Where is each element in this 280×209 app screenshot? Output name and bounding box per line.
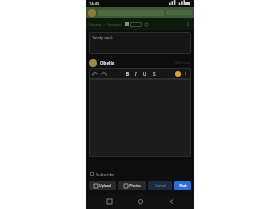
button[interactable]: Undo (92, 71, 98, 77)
button[interactable]: Strikethrough (151, 71, 157, 77)
staticText: I (135, 71, 137, 77)
button[interactable]: Back (163, 193, 179, 209)
button[interactable]: Underline (142, 71, 148, 77)
staticText: B (126, 71, 129, 77)
staticText: Obelix (100, 60, 115, 66)
button[interactable] (89, 79, 191, 157)
button[interactable]: Redo (101, 71, 107, 77)
button[interactable]: Subscribe (90, 169, 190, 179)
button[interactable]: Emoji (175, 71, 181, 77)
staticText: Tandy said: (92, 35, 113, 40)
button[interactable]: Photos (118, 181, 146, 190)
button[interactable]: Bold (124, 71, 130, 77)
staticText: 14:45 (89, 1, 100, 6)
staticText: Cancel (155, 183, 166, 188)
button[interactable]: More formatting (183, 71, 188, 76)
staticText: Subscribe (96, 172, 115, 177)
button[interactable]: Upload (89, 181, 116, 190)
button[interactable]: Obelix (89, 57, 191, 68)
staticText: Old School (175, 61, 191, 65)
staticText: S (153, 71, 156, 77)
button[interactable]: Post (174, 181, 191, 190)
staticText: U (143, 71, 147, 77)
button[interactable]: Account (88, 9, 96, 17)
button[interactable]: Recents (101, 193, 117, 209)
button[interactable]: Watch (144, 22, 149, 27)
staticText: Post (179, 183, 187, 188)
button[interactable]: Cancel (148, 181, 172, 190)
button[interactable]: Italic (133, 71, 139, 77)
button[interactable]: Home (132, 193, 148, 209)
staticText: Upload (99, 183, 111, 188)
staticText: Photos (129, 183, 141, 188)
staticText: Forums > Hangout (89, 22, 122, 27)
button[interactable]: Tandy said: (89, 32, 191, 54)
button[interactable]: More options (185, 21, 191, 27)
